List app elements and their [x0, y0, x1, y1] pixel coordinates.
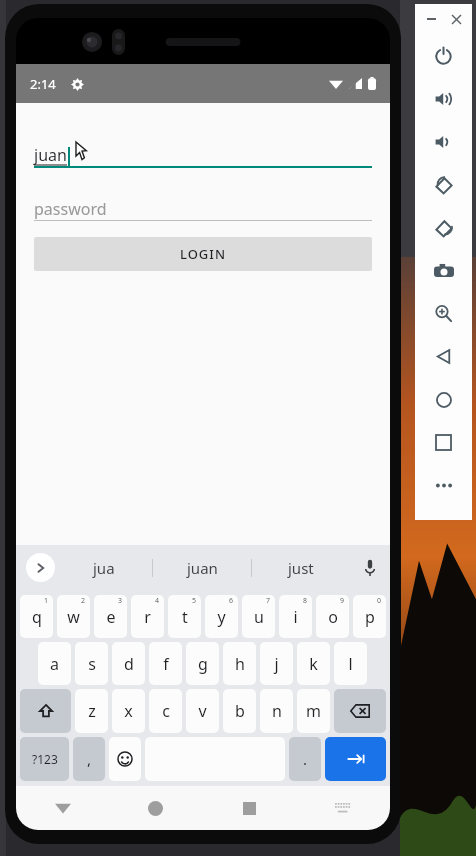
- button[interactable]: jua: [55, 545, 152, 590]
- button[interactable]: Back: [415, 335, 472, 378]
- button[interactable]: k: [297, 642, 330, 685]
- button[interactable]: Overview: [415, 421, 472, 464]
- staticText: t: [182, 606, 188, 628]
- staticText: o: [328, 606, 338, 628]
- staticText: ,: [87, 749, 92, 769]
- staticText: g: [198, 653, 208, 675]
- button[interactable]: m: [297, 689, 330, 733]
- button[interactable]: j: [260, 642, 293, 685]
- button[interactable]: Screenshot: [415, 249, 472, 292]
- staticText: k: [309, 653, 318, 675]
- button[interactable]: b: [223, 689, 256, 733]
- staticText: b: [235, 700, 245, 722]
- button[interactable]: password: [34, 190, 372, 220]
- staticText: c: [162, 700, 170, 722]
- button[interactable]: Back: [16, 786, 109, 830]
- button[interactable]: juan: [153, 545, 251, 590]
- button[interactable]: o: [316, 595, 349, 638]
- button[interactable]: Volume down: [415, 120, 472, 163]
- button[interactable]: Rotate left: [415, 163, 472, 206]
- staticText: 2:14: [30, 75, 56, 93]
- button[interactable]: More: [415, 464, 472, 507]
- button[interactable]: just: [252, 545, 350, 590]
- staticText: jua: [93, 558, 115, 578]
- button[interactable]: More suggestions: [26, 553, 55, 582]
- staticText: z: [88, 700, 96, 722]
- button[interactable]: Rotate right: [415, 206, 472, 249]
- button[interactable]: u: [242, 595, 275, 638]
- staticText: 1: [44, 596, 49, 606]
- button[interactable]: .: [289, 737, 321, 781]
- button[interactable]: h: [223, 642, 256, 685]
- staticText: 5: [192, 596, 197, 606]
- staticText: 9: [340, 596, 345, 606]
- button[interactable]: d: [112, 642, 145, 685]
- staticText: s: [88, 653, 96, 675]
- staticText: 0: [377, 596, 382, 606]
- button[interactable]: Backspace: [334, 689, 386, 733]
- button[interactable]: p: [353, 595, 386, 638]
- button[interactable]: s: [75, 642, 108, 685]
- staticText: LOGIN: [180, 245, 227, 263]
- button[interactable]: x: [112, 689, 145, 733]
- button[interactable]: Home: [109, 786, 202, 830]
- staticText: u: [254, 606, 264, 628]
- button[interactable]: ,: [73, 737, 105, 781]
- button[interactable]: Zoom: [415, 292, 472, 335]
- staticText: w: [67, 606, 80, 628]
- button[interactable]: Settings: [68, 75, 86, 93]
- button[interactable]: t: [168, 595, 201, 638]
- staticText: 6: [229, 596, 234, 606]
- button[interactable]: q: [20, 595, 53, 638]
- button[interactable]: i: [279, 595, 312, 638]
- button[interactable]: g: [186, 642, 219, 685]
- button[interactable]: r: [131, 595, 164, 638]
- button[interactable]: Switch keyboard: [296, 786, 390, 830]
- button[interactable]: Volume up: [415, 77, 472, 120]
- staticText: just: [288, 558, 314, 578]
- staticText: juan: [187, 558, 218, 578]
- button[interactable]: y: [205, 595, 238, 638]
- staticText: 4: [155, 596, 160, 606]
- staticText: p: [365, 606, 375, 628]
- staticText: v: [198, 700, 207, 722]
- button[interactable]: Close: [447, 10, 465, 28]
- staticText: f: [163, 653, 169, 675]
- staticText: 8: [303, 596, 308, 606]
- button[interactable]: f: [149, 642, 182, 685]
- staticText: 2: [81, 596, 86, 606]
- staticText: e: [106, 606, 116, 628]
- button[interactable]: l: [334, 642, 367, 685]
- button[interactable]: v: [186, 689, 219, 733]
- staticText: password: [34, 198, 107, 220]
- button[interactable]: w: [57, 595, 90, 638]
- button[interactable]: juan: [34, 130, 372, 166]
- button[interactable]: Shift: [20, 689, 71, 733]
- button[interactable]: c: [149, 689, 182, 733]
- button[interactable]: a: [38, 642, 71, 685]
- staticText: a: [50, 653, 59, 675]
- staticText: q: [32, 606, 42, 628]
- staticText: h: [235, 653, 245, 675]
- button[interactable]: z: [75, 689, 108, 733]
- button[interactable]: Home: [415, 378, 472, 421]
- button[interactable]: Recent apps: [202, 786, 296, 830]
- staticText: n: [272, 700, 282, 722]
- button[interactable]: Emoji: [109, 737, 141, 781]
- button[interactable]: e: [94, 595, 127, 638]
- button[interactable]: n: [260, 689, 293, 733]
- staticText: 3: [118, 596, 123, 606]
- staticText: m: [306, 700, 321, 722]
- button[interactable]: ?123: [20, 737, 69, 781]
- staticText: l: [348, 653, 353, 675]
- button[interactable]: LOGIN: [34, 237, 372, 271]
- button[interactable]: Voice input: [350, 545, 390, 590]
- button[interactable]: Power: [415, 34, 472, 77]
- staticText: ?123: [32, 751, 58, 767]
- button[interactable]: Minimize: [422, 10, 440, 28]
- staticText: 7: [266, 596, 271, 606]
- staticText: r: [144, 606, 151, 628]
- staticText: x: [124, 700, 133, 722]
- button[interactable]: Next: [325, 737, 386, 781]
